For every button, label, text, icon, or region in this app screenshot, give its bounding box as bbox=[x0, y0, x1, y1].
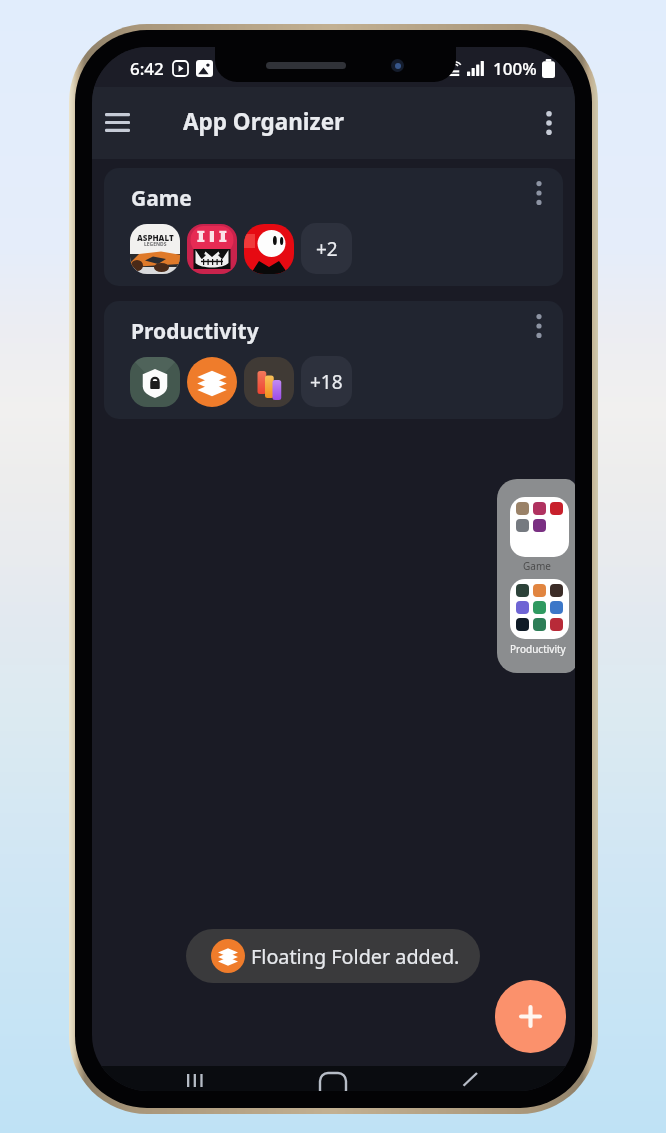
staticText: LEGENDS bbox=[144, 241, 167, 248]
staticText: ASPHALT bbox=[137, 232, 174, 243]
button[interactable]: Folder options bbox=[516, 170, 562, 216]
staticText: Productivity bbox=[510, 642, 566, 656]
staticText: Floating Folder added. bbox=[251, 943, 460, 970]
button[interactable]: Folder options bbox=[516, 303, 562, 349]
button[interactable]: Recents bbox=[174, 1066, 218, 1091]
button[interactable]: +18 bbox=[301, 356, 352, 407]
button[interactable]: Back bbox=[447, 1066, 491, 1091]
staticText: Game bbox=[131, 184, 192, 213]
button[interactable]: Home bbox=[311, 1066, 355, 1091]
button[interactable]: Floating folder widget bbox=[497, 479, 575, 673]
button[interactable]: More options bbox=[525, 99, 573, 147]
button[interactable]: +2 bbox=[301, 223, 352, 274]
staticText: 6:42 bbox=[130, 57, 164, 80]
button[interactable]: Game bbox=[104, 168, 563, 286]
staticText: +18 bbox=[310, 369, 343, 395]
staticText: Game bbox=[523, 559, 551, 573]
button[interactable]: Menu bbox=[93, 98, 141, 146]
staticText: 100% bbox=[493, 57, 537, 80]
button[interactable]: Productivity bbox=[104, 301, 563, 419]
staticText: Productivity bbox=[131, 317, 259, 346]
button[interactable]: Floating Folder added. bbox=[186, 929, 480, 983]
staticText: App Organizer bbox=[183, 106, 345, 137]
staticText: +2 bbox=[316, 236, 338, 262]
button[interactable]: Add folder bbox=[495, 980, 566, 1053]
